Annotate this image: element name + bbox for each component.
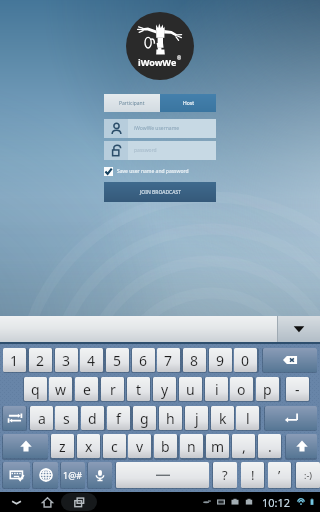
button[interactable]: Enter (265, 406, 317, 430)
staticText: 6 (139, 351, 148, 370)
button[interactable]: 6 (132, 348, 155, 372)
button[interactable]: j (185, 406, 208, 430)
button[interactable]: v (128, 434, 151, 458)
button[interactable]: h (159, 406, 182, 430)
staticText: p (263, 380, 272, 399)
staticText: password (134, 147, 157, 154)
staticText: 5 (113, 351, 122, 370)
staticText: j (195, 409, 199, 428)
button[interactable]: Tab (3, 406, 26, 430)
staticText: g (140, 409, 149, 428)
button[interactable]: n (180, 434, 203, 458)
staticText: 4 (87, 351, 96, 370)
staticText: l (246, 409, 250, 428)
button[interactable]: 8 (183, 348, 206, 372)
button[interactable]: Save user name and password (104, 165, 216, 177)
button[interactable]: password (104, 141, 216, 160)
staticText: ? (222, 466, 228, 484)
staticText: 8 (190, 351, 199, 370)
button[interactable]: Participant (104, 94, 160, 112)
button[interactable]: Backspace (263, 348, 317, 372)
button[interactable]: e (75, 377, 98, 401)
staticText: ! (251, 466, 255, 484)
button[interactable]: 4 (80, 348, 103, 372)
button[interactable]: 0 (234, 348, 257, 372)
button[interactable]: JOIN BROADCAST (104, 182, 216, 202)
staticText: y (161, 380, 169, 399)
button[interactable]: , (232, 434, 255, 458)
button[interactable]: m (206, 434, 229, 458)
button[interactable]: o (230, 377, 253, 401)
button[interactable]: 2 (29, 348, 52, 372)
button[interactable]: Host (160, 94, 216, 112)
staticText: :-) (304, 469, 313, 481)
button[interactable]: k (211, 406, 234, 430)
staticText: Participant (119, 100, 145, 107)
button[interactable]: x (77, 434, 100, 458)
button[interactable]: a (30, 406, 53, 430)
button[interactable]: q (24, 377, 47, 401)
button[interactable]: Space (116, 462, 209, 488)
button[interactable]: b (154, 434, 177, 458)
button[interactable]: l (236, 406, 259, 430)
button[interactable]: 7 (157, 348, 180, 372)
button[interactable]: c (103, 434, 126, 458)
staticText: e (83, 380, 91, 399)
button[interactable]: p (256, 377, 279, 401)
staticText: 0 (241, 351, 250, 370)
staticText: 7 (164, 351, 173, 370)
button[interactable]: Recent apps (66, 492, 92, 512)
button[interactable]: Change language (33, 462, 58, 488)
button[interactable]: Show more suggestions (278, 316, 320, 342)
staticText: iWowWe username (134, 125, 180, 132)
staticText: 2 (36, 351, 45, 370)
button[interactable]: i (205, 377, 228, 401)
button[interactable]: 1 (3, 348, 26, 372)
button[interactable]: - (286, 377, 309, 401)
button[interactable]: iWowWe username (104, 119, 216, 138)
staticText: iWowWe (138, 56, 177, 68)
button[interactable]: 1@# (61, 462, 85, 488)
button[interactable]: y (153, 377, 176, 401)
button[interactable]: 9 (209, 348, 232, 372)
staticText: JOIN BROADCAST (140, 189, 181, 196)
staticText: w (55, 380, 67, 399)
staticText: d (88, 409, 97, 428)
button[interactable]: ! (241, 462, 264, 488)
staticText: r (110, 380, 116, 399)
staticText: - (295, 380, 300, 399)
button[interactable]: Input settings (3, 462, 30, 488)
button[interactable]: t (127, 377, 150, 401)
staticText: v (136, 437, 144, 456)
button[interactable]: z (51, 434, 74, 458)
button[interactable]: w (49, 377, 72, 401)
button[interactable]: Home (34, 492, 60, 512)
staticText: 1 (10, 351, 19, 370)
button[interactable]: Shift (286, 434, 317, 458)
button[interactable]: :-) (296, 462, 320, 488)
button[interactable]: s (55, 406, 78, 430)
staticText: a (38, 409, 46, 428)
button[interactable]: 3 (55, 348, 78, 372)
button[interactable]: 5 (106, 348, 129, 372)
button[interactable]: ? (213, 462, 237, 488)
button[interactable]: f (107, 406, 130, 430)
button[interactable]: Hide keyboard (3, 492, 29, 512)
button[interactable]: u (179, 377, 202, 401)
button[interactable]: d (81, 406, 104, 430)
staticText: ’ (278, 466, 281, 484)
button[interactable]: g (133, 406, 156, 430)
staticText: 3 (62, 351, 71, 370)
button[interactable]: iWowWe logo (126, 12, 194, 80)
staticText: q (31, 380, 40, 399)
staticText: i (215, 380, 219, 399)
staticText: n (187, 437, 196, 456)
button[interactable]: Voice input (88, 462, 112, 488)
button[interactable]: Shift (3, 434, 48, 458)
button[interactable]: r (101, 377, 124, 401)
button[interactable]: ’ (268, 462, 291, 488)
staticText: t (136, 380, 142, 399)
staticText: ® (177, 55, 182, 62)
button[interactable]: . (258, 434, 281, 458)
staticText: f (116, 409, 121, 428)
